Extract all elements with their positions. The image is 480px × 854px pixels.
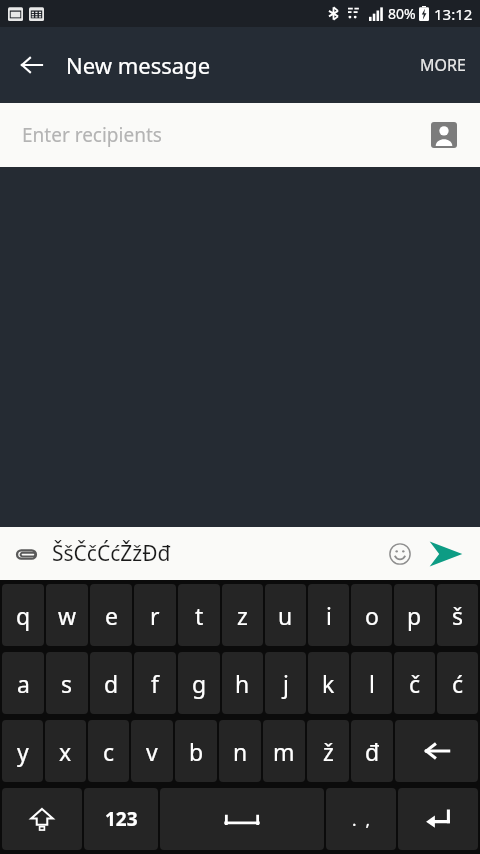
- staticText: a: [17, 668, 30, 699]
- staticText: 80%: [388, 4, 416, 23]
- staticText: š: [452, 600, 464, 631]
- button[interactable]: i: [308, 584, 349, 646]
- button[interactable]: y: [2, 720, 43, 782]
- staticText: e: [105, 600, 118, 631]
- staticText: c: [103, 736, 115, 767]
- button[interactable]: r: [134, 584, 176, 646]
- staticText: s: [61, 668, 73, 699]
- button[interactable]: d: [90, 652, 132, 714]
- staticText: MORE: [420, 54, 466, 76]
- button[interactable]: Backspace: [395, 720, 478, 782]
- button[interactable]: z: [222, 584, 263, 646]
- staticText: . ,: [352, 808, 370, 831]
- button[interactable]: m: [263, 720, 305, 782]
- button[interactable]: Add recipient from contacts: [422, 113, 466, 157]
- staticText: i: [326, 600, 332, 631]
- button[interactable]: v: [131, 720, 173, 782]
- button[interactable]: x: [45, 720, 86, 782]
- staticText: r: [150, 600, 160, 631]
- button[interactable]: Shift: [2, 788, 82, 850]
- button[interactable]: a: [2, 652, 44, 714]
- staticText: 13:12: [434, 4, 473, 24]
- button[interactable]: Attach: [6, 534, 46, 574]
- staticText: n: [233, 736, 248, 767]
- button[interactable]: đ: [351, 720, 393, 782]
- staticText: h: [235, 668, 250, 699]
- staticText: w: [58, 600, 77, 631]
- staticText: o: [365, 600, 379, 631]
- staticText: y: [17, 736, 29, 767]
- button[interactable]: c: [88, 720, 129, 782]
- staticText: l: [369, 668, 375, 699]
- staticText: m: [273, 736, 295, 767]
- button[interactable]: w: [46, 584, 88, 646]
- staticText: ŠšČčĆćŽžĐđ: [52, 539, 171, 568]
- button[interactable]: Emoji: [380, 534, 420, 574]
- staticText: f: [151, 668, 159, 699]
- staticText: g: [192, 668, 207, 699]
- staticText: p: [407, 600, 422, 631]
- button[interactable]: o: [351, 584, 392, 646]
- staticText: b: [189, 736, 204, 767]
- staticText: x: [59, 736, 72, 767]
- staticText: ž: [323, 736, 334, 767]
- staticText: v: [146, 736, 158, 767]
- button[interactable]: . ,: [326, 788, 396, 850]
- staticText: New message: [66, 50, 211, 80]
- button[interactable]: č: [394, 652, 435, 714]
- button[interactable]: j: [265, 652, 306, 714]
- button[interactable]: Enter: [398, 788, 478, 850]
- button[interactable]: u: [265, 584, 306, 646]
- button[interactable]: ž: [307, 720, 349, 782]
- button[interactable]: n: [219, 720, 261, 782]
- staticText: t: [195, 600, 204, 631]
- button[interactable]: p: [394, 584, 435, 646]
- staticText: q: [16, 600, 31, 631]
- button[interactable]: MORE: [406, 27, 480, 103]
- button[interactable]: l: [351, 652, 392, 714]
- staticText: k: [322, 668, 335, 699]
- button[interactable]: 123: [84, 788, 158, 850]
- button[interactable]: b: [175, 720, 217, 782]
- staticText: đ: [365, 736, 380, 767]
- button[interactable]: ć: [437, 652, 478, 714]
- button[interactable]: t: [178, 584, 220, 646]
- staticText: Enter recipients: [22, 122, 162, 148]
- button[interactable]: h: [222, 652, 263, 714]
- staticText: d: [104, 668, 119, 699]
- staticText: j: [283, 668, 289, 699]
- staticText: č: [409, 668, 421, 699]
- button[interactable]: Send: [422, 530, 470, 578]
- button[interactable]: g: [178, 652, 220, 714]
- button[interactable]: Enter recipients: [0, 103, 480, 167]
- button[interactable]: q: [2, 584, 44, 646]
- button[interactable]: f: [134, 652, 176, 714]
- button[interactable]: e: [90, 584, 132, 646]
- staticText: z: [237, 600, 248, 631]
- button[interactable]: Back: [8, 41, 56, 89]
- button[interactable]: s: [46, 652, 88, 714]
- staticText: u: [278, 600, 293, 631]
- staticText: 123: [105, 806, 138, 832]
- button[interactable]: Space: [160, 788, 324, 850]
- staticText: ć: [452, 668, 464, 699]
- button[interactable]: k: [308, 652, 349, 714]
- button[interactable]: š: [437, 584, 478, 646]
